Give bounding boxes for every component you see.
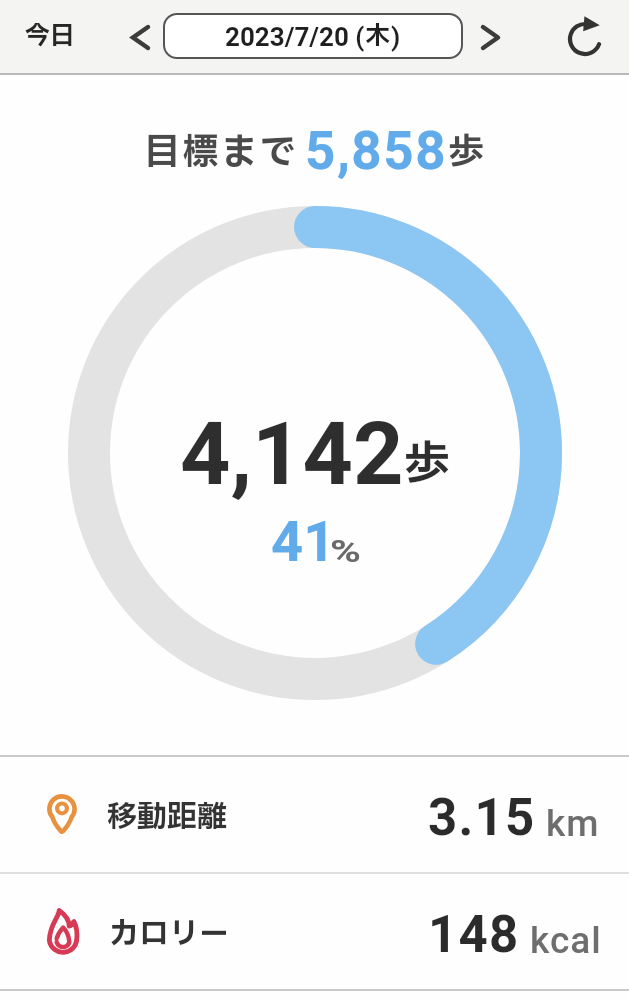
staticText: 2023/7/20 ( <box>225 22 365 52</box>
button[interactable]: 2023/7/20 ( <box>163 13 463 59</box>
staticText: 目標まで <box>144 126 299 180</box>
staticText: 歩 <box>448 126 485 180</box>
staticText: % <box>330 533 361 569</box>
staticText: kcal <box>530 919 602 962</box>
staticText: km <box>546 802 600 845</box>
button[interactable]: 移動距離 <box>0 757 629 872</box>
staticText: 4,142 <box>180 402 404 505</box>
staticText: ) <box>391 22 401 52</box>
button[interactable] <box>561 13 609 61</box>
staticText: カロリー <box>109 912 229 957</box>
button[interactable]: カロリー <box>0 874 629 989</box>
button[interactable] <box>120 17 160 57</box>
staticText: 148 <box>428 905 520 965</box>
staticText: 5,858 <box>305 120 448 182</box>
staticText: 41 <box>271 509 336 575</box>
staticText: 木 <box>365 18 391 55</box>
button[interactable]: 今日 <box>18 8 83 65</box>
button[interactable] <box>470 17 510 57</box>
staticText: 今日 <box>25 18 76 55</box>
staticText: 3.15 <box>428 788 536 848</box>
staticText: 移動距離 <box>107 795 227 840</box>
staticText: 歩 <box>404 430 450 499</box>
